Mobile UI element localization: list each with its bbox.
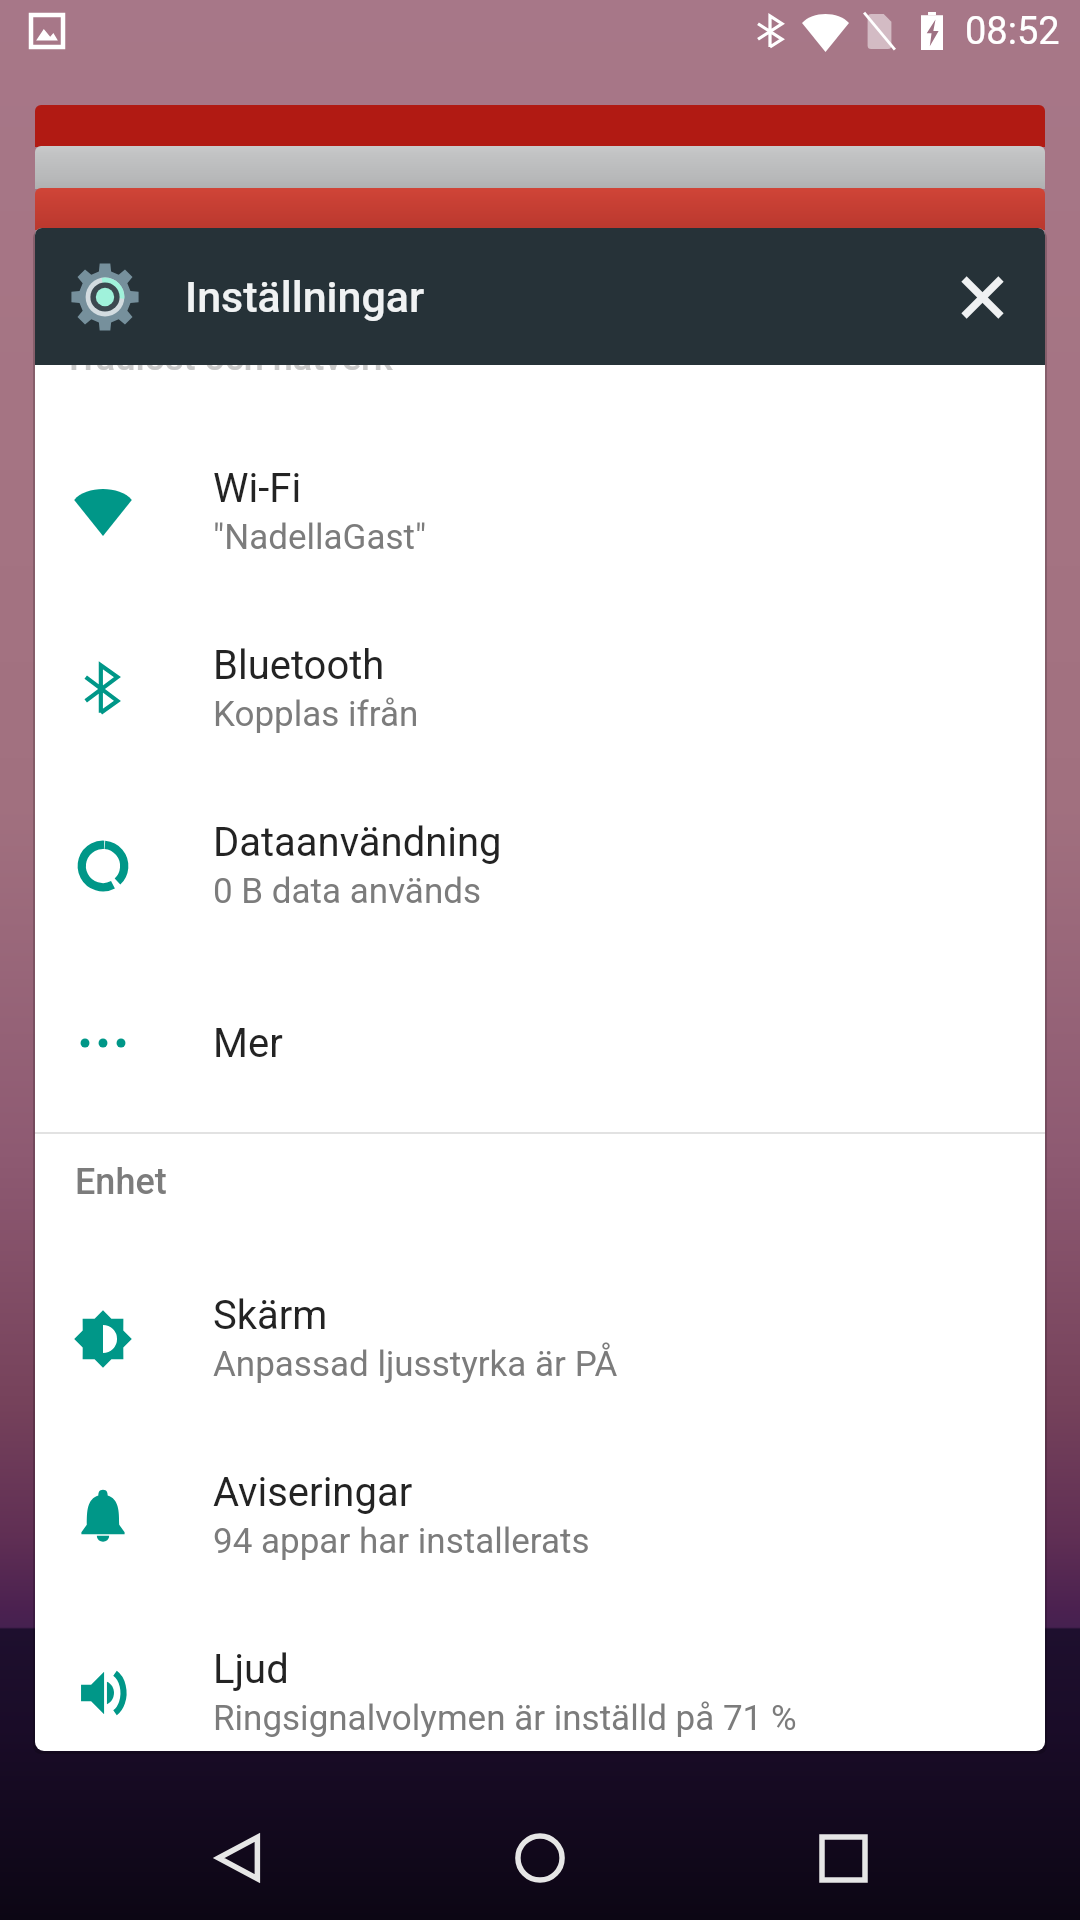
staticText: Aviseringar [213,1469,413,1516]
staticText: Ljud [213,1646,289,1693]
staticText: Dataanvändning [213,819,502,866]
staticText: 0 B data används [213,871,482,912]
button[interactable]: Mer [35,964,1045,1122]
staticText: Ringsignalvolymen är inställd på 71 % [213,1698,797,1739]
button[interactable]: Aviseringar [35,1427,1045,1604]
button[interactable]: Hem [475,1796,605,1920]
staticText: Trådlöst och nätverk [63,337,393,379]
button[interactable]: Senaste appar [778,1796,908,1920]
staticText: Anpassad ljusstyrka är PÅ [213,1344,618,1385]
staticText: Bluetooth [213,642,385,689]
staticText: Mer [213,1020,283,1067]
staticText: 94 appar har installerats [213,1521,590,1562]
staticText: Kopplas ifrån [213,694,419,735]
staticText: 08:52 [965,9,1060,54]
button[interactable]: Ljud [35,1604,1045,1751]
button[interactable]: Dataanvändning [35,777,1045,954]
button[interactable]: Tillbaka [173,1796,303,1920]
button[interactable]: Skärm [35,1250,1045,1427]
staticText: Inställningar [185,272,425,322]
button[interactable]: Wi-Fi [35,423,1045,600]
button[interactable]: Stäng [927,242,1037,352]
staticText: Wi-Fi [213,465,302,512]
staticText: Skärm [213,1292,328,1339]
staticText: Enhet [75,1161,167,1203]
staticText: "NadellaGast" [213,517,427,558]
button[interactable]: Bluetooth [35,600,1045,777]
